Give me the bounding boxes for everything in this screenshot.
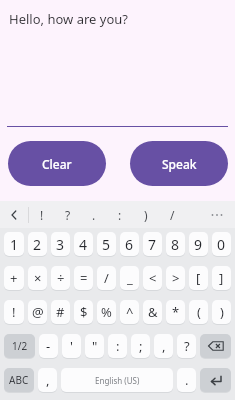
staticText: [	[196, 269, 201, 287]
button[interactable]: .	[81, 201, 107, 228]
button[interactable]	[199, 201, 235, 228]
button[interactable]: %	[97, 300, 116, 324]
button[interactable]: !	[29, 201, 55, 228]
button[interactable]: [	[189, 266, 208, 290]
staticText: 9	[194, 235, 203, 254]
button[interactable]: <	[143, 266, 162, 290]
button[interactable]: ,	[154, 334, 173, 358]
button[interactable]: 6	[120, 232, 139, 256]
staticText: Clear	[42, 156, 72, 172]
staticText: *	[172, 303, 180, 321]
button[interactable]	[200, 334, 231, 358]
button[interactable]: '	[62, 334, 81, 358]
button[interactable]: 4	[74, 232, 93, 256]
staticText: (	[197, 303, 201, 321]
staticText: /	[170, 207, 175, 223]
button[interactable]: ;	[131, 334, 150, 358]
staticText: <	[149, 269, 157, 287]
button[interactable]: ?	[55, 201, 81, 228]
button[interactable]: -	[39, 334, 58, 358]
staticText: ,	[46, 371, 50, 389]
staticText: $	[80, 303, 88, 321]
button[interactable]: (	[189, 300, 208, 324]
staticText: @	[32, 303, 44, 321]
staticText: :	[116, 337, 120, 355]
button[interactable]: 9	[189, 232, 208, 256]
staticText: ^	[126, 303, 134, 321]
staticText: /	[104, 269, 109, 287]
button[interactable]: ?	[177, 334, 196, 358]
staticText: ÷	[57, 269, 65, 287]
button[interactable]	[200, 368, 231, 392]
button[interactable]: "	[85, 334, 104, 358]
button[interactable]: ×	[28, 266, 47, 290]
button[interactable]: /	[159, 201, 185, 228]
staticText: 1/2	[12, 339, 28, 353]
button[interactable]: 3	[51, 232, 70, 256]
button[interactable]: 0	[212, 232, 231, 256]
button[interactable]: :	[107, 201, 133, 228]
staticText: :	[118, 207, 122, 223]
staticText: Speak	[162, 156, 197, 172]
button[interactable]: )	[133, 201, 159, 228]
staticText: >	[172, 269, 180, 287]
staticText: ;	[139, 337, 143, 355]
button[interactable]: Clear	[8, 141, 106, 186]
button[interactable]: =	[74, 266, 93, 290]
button[interactable]: !	[4, 300, 24, 324]
staticText: _	[127, 269, 133, 287]
staticText: .	[185, 371, 189, 389]
staticText: !	[40, 207, 44, 223]
staticText: '	[70, 337, 73, 355]
button[interactable]: Speak	[130, 141, 228, 186]
staticText: 8	[171, 235, 180, 254]
button[interactable]: 1	[4, 232, 24, 256]
staticText: 7	[148, 235, 157, 254]
staticText: 6	[125, 235, 134, 254]
staticText: %	[101, 303, 112, 321]
staticText: 1	[10, 235, 19, 254]
button[interactable]: _	[120, 266, 139, 290]
staticText: =	[80, 269, 88, 287]
button[interactable]: *	[166, 300, 185, 324]
staticText: ABC	[9, 373, 29, 387]
button[interactable]: @	[28, 300, 47, 324]
staticText: ?	[65, 207, 71, 223]
button[interactable]: #	[51, 300, 70, 324]
staticText: )	[220, 303, 224, 321]
staticText: )	[144, 207, 148, 223]
button[interactable]: ABC	[4, 368, 34, 392]
button[interactable]: $	[74, 300, 93, 324]
button[interactable]: .	[177, 368, 196, 392]
staticText: English (US)	[95, 375, 140, 386]
button[interactable]: 5	[97, 232, 116, 256]
button[interactable]: /	[97, 266, 116, 290]
staticText: 3	[56, 235, 65, 254]
staticText: ?	[184, 337, 190, 355]
staticText: 0	[217, 235, 226, 254]
button[interactable]: 1/2	[4, 334, 35, 358]
button[interactable]: &	[143, 300, 162, 324]
button[interactable]: 7	[143, 232, 162, 256]
staticText: .	[92, 207, 96, 223]
button[interactable]: ÷	[51, 266, 70, 290]
button[interactable]	[0, 201, 28, 228]
button[interactable]: ,	[38, 368, 57, 392]
button[interactable]: +	[4, 266, 24, 290]
staticText: -	[46, 337, 51, 355]
button[interactable]: 8	[166, 232, 185, 256]
button[interactable]: :	[108, 334, 127, 358]
staticText: ×	[34, 269, 42, 287]
button[interactable]: )	[212, 300, 231, 324]
button[interactable]: 2	[28, 232, 47, 256]
button[interactable]: ]	[212, 266, 231, 290]
staticText: !	[12, 303, 16, 321]
staticText: #	[56, 303, 65, 321]
button[interactable]: ^	[120, 300, 139, 324]
staticText: Hello, how are you?	[9, 10, 128, 28]
button[interactable]: English (US)	[61, 368, 173, 392]
staticText: 4	[79, 235, 88, 254]
staticText: 2	[33, 235, 42, 254]
staticText: ]	[219, 269, 224, 287]
button[interactable]: >	[166, 266, 185, 290]
